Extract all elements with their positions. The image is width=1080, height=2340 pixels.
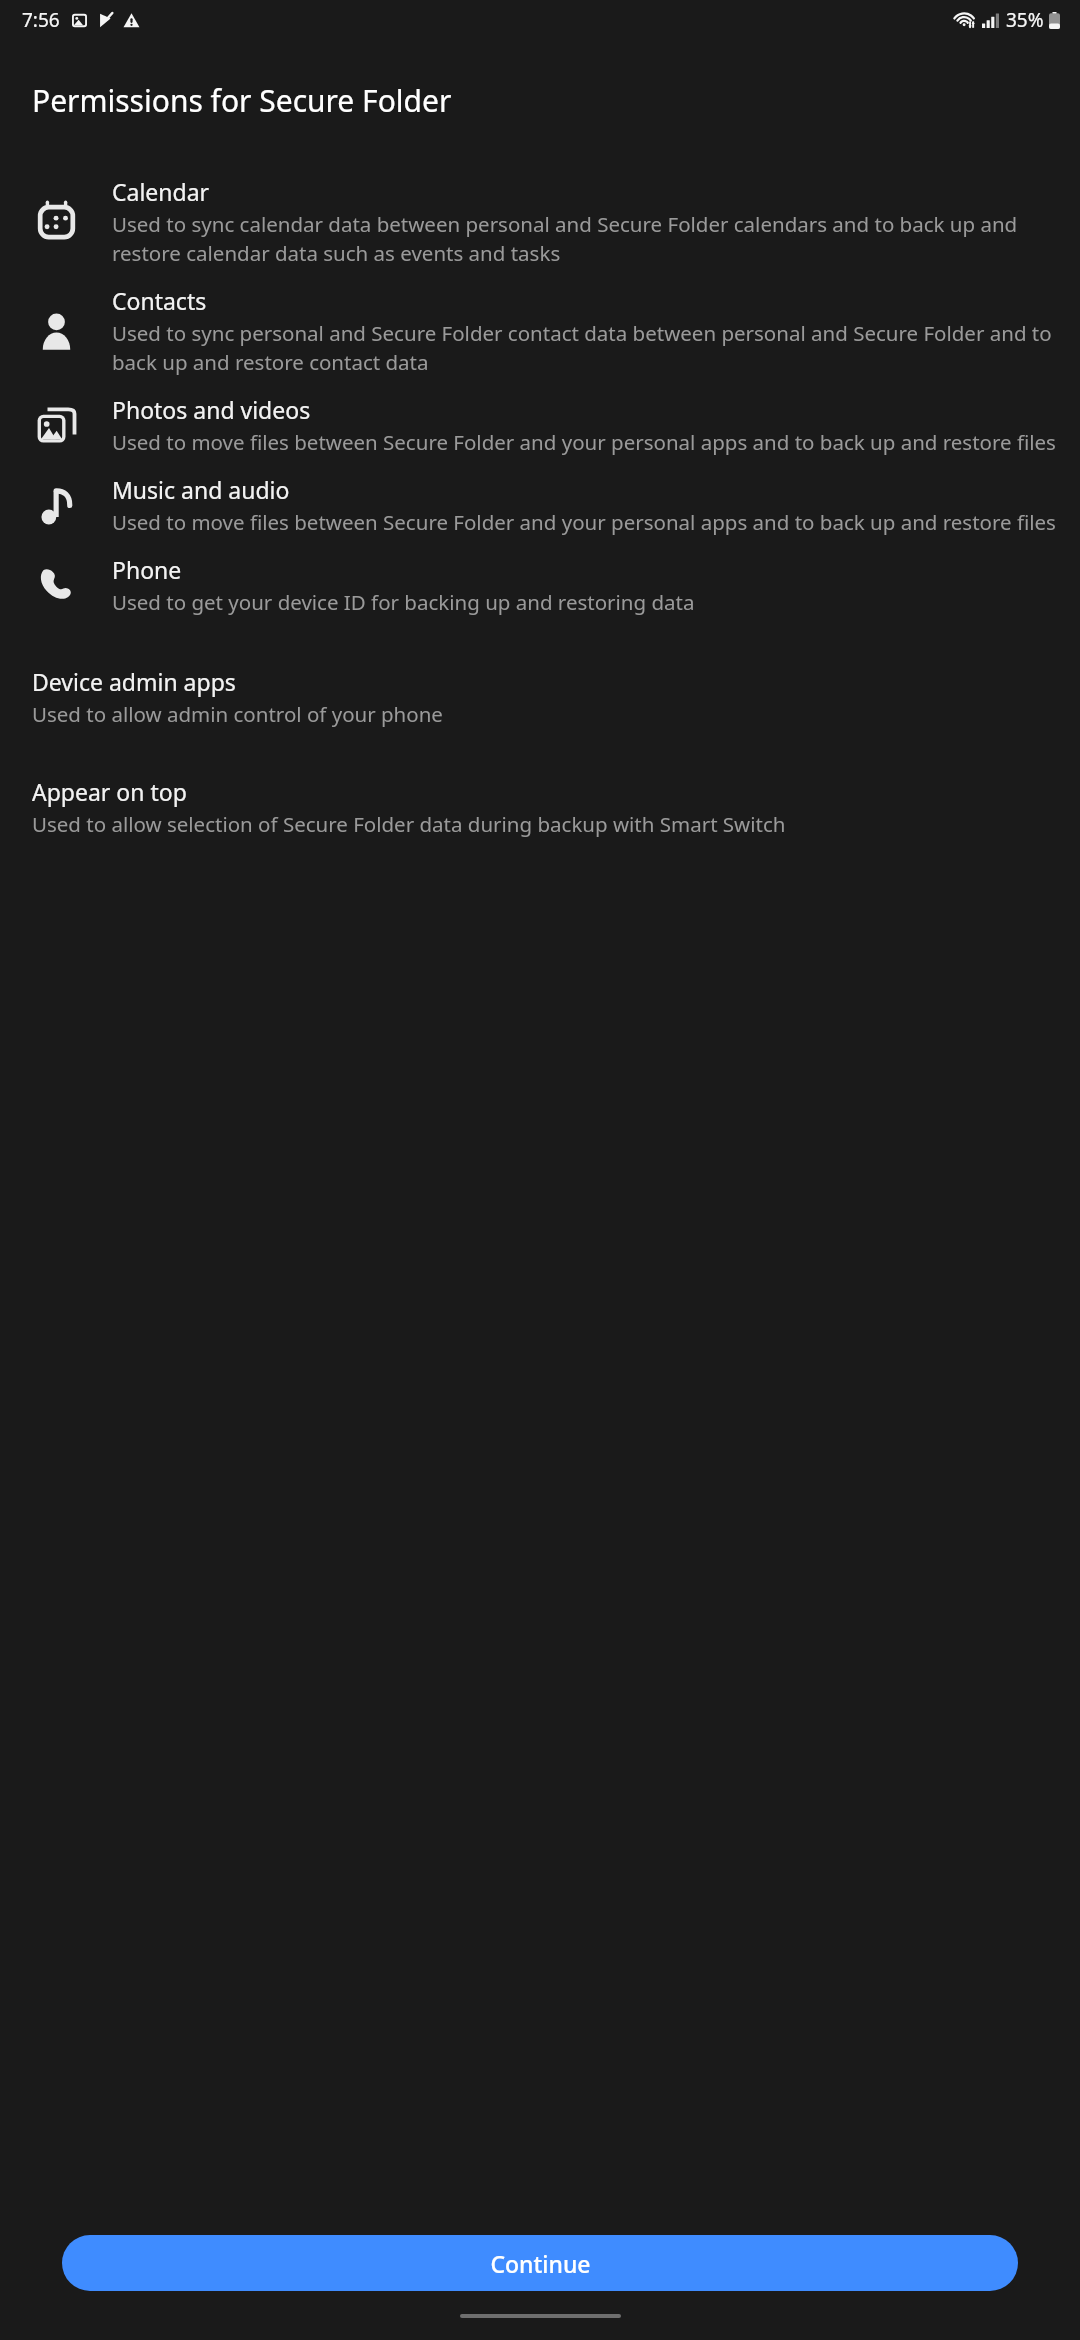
staticText: Device admin apps	[32, 666, 236, 697]
staticText: Phone	[112, 554, 182, 585]
button[interactable]: Continue	[62, 2235, 1018, 2291]
staticText: Used to sync calendar data between perso…	[112, 210, 1058, 267]
staticText: Permissions for Secure Folder	[32, 80, 452, 121]
staticText: Used to allow admin control of your phon…	[32, 700, 443, 728]
staticText: Contacts	[112, 285, 207, 316]
button[interactable]: Photos and videos	[0, 376, 1080, 456]
button[interactable]: Appear on top	[0, 728, 1080, 838]
staticText: Used to move files between Secure Folder…	[112, 428, 1056, 456]
button[interactable]: Calendar	[0, 121, 1080, 267]
staticText: Appear on top	[32, 776, 187, 807]
staticText: Music and audio	[112, 474, 290, 505]
staticText: Photos and videos	[112, 394, 311, 425]
staticText: Continue	[490, 2248, 591, 2279]
staticText: Used to get your device ID for backing u…	[112, 588, 695, 616]
staticText: 7:56	[22, 7, 60, 33]
staticText: Used to move files between Secure Folder…	[112, 508, 1056, 536]
button[interactable]: Music and audio	[0, 456, 1080, 536]
staticText: Used to sync personal and Secure Folder …	[112, 319, 1058, 376]
button[interactable]: Contacts	[0, 267, 1080, 376]
staticText: Calendar	[112, 176, 210, 207]
button[interactable]: Phone	[0, 536, 1080, 616]
staticText: Used to allow selection of Secure Folder…	[32, 810, 786, 838]
staticText: 35%	[1006, 7, 1044, 33]
button[interactable]: Device admin apps	[0, 616, 1080, 728]
